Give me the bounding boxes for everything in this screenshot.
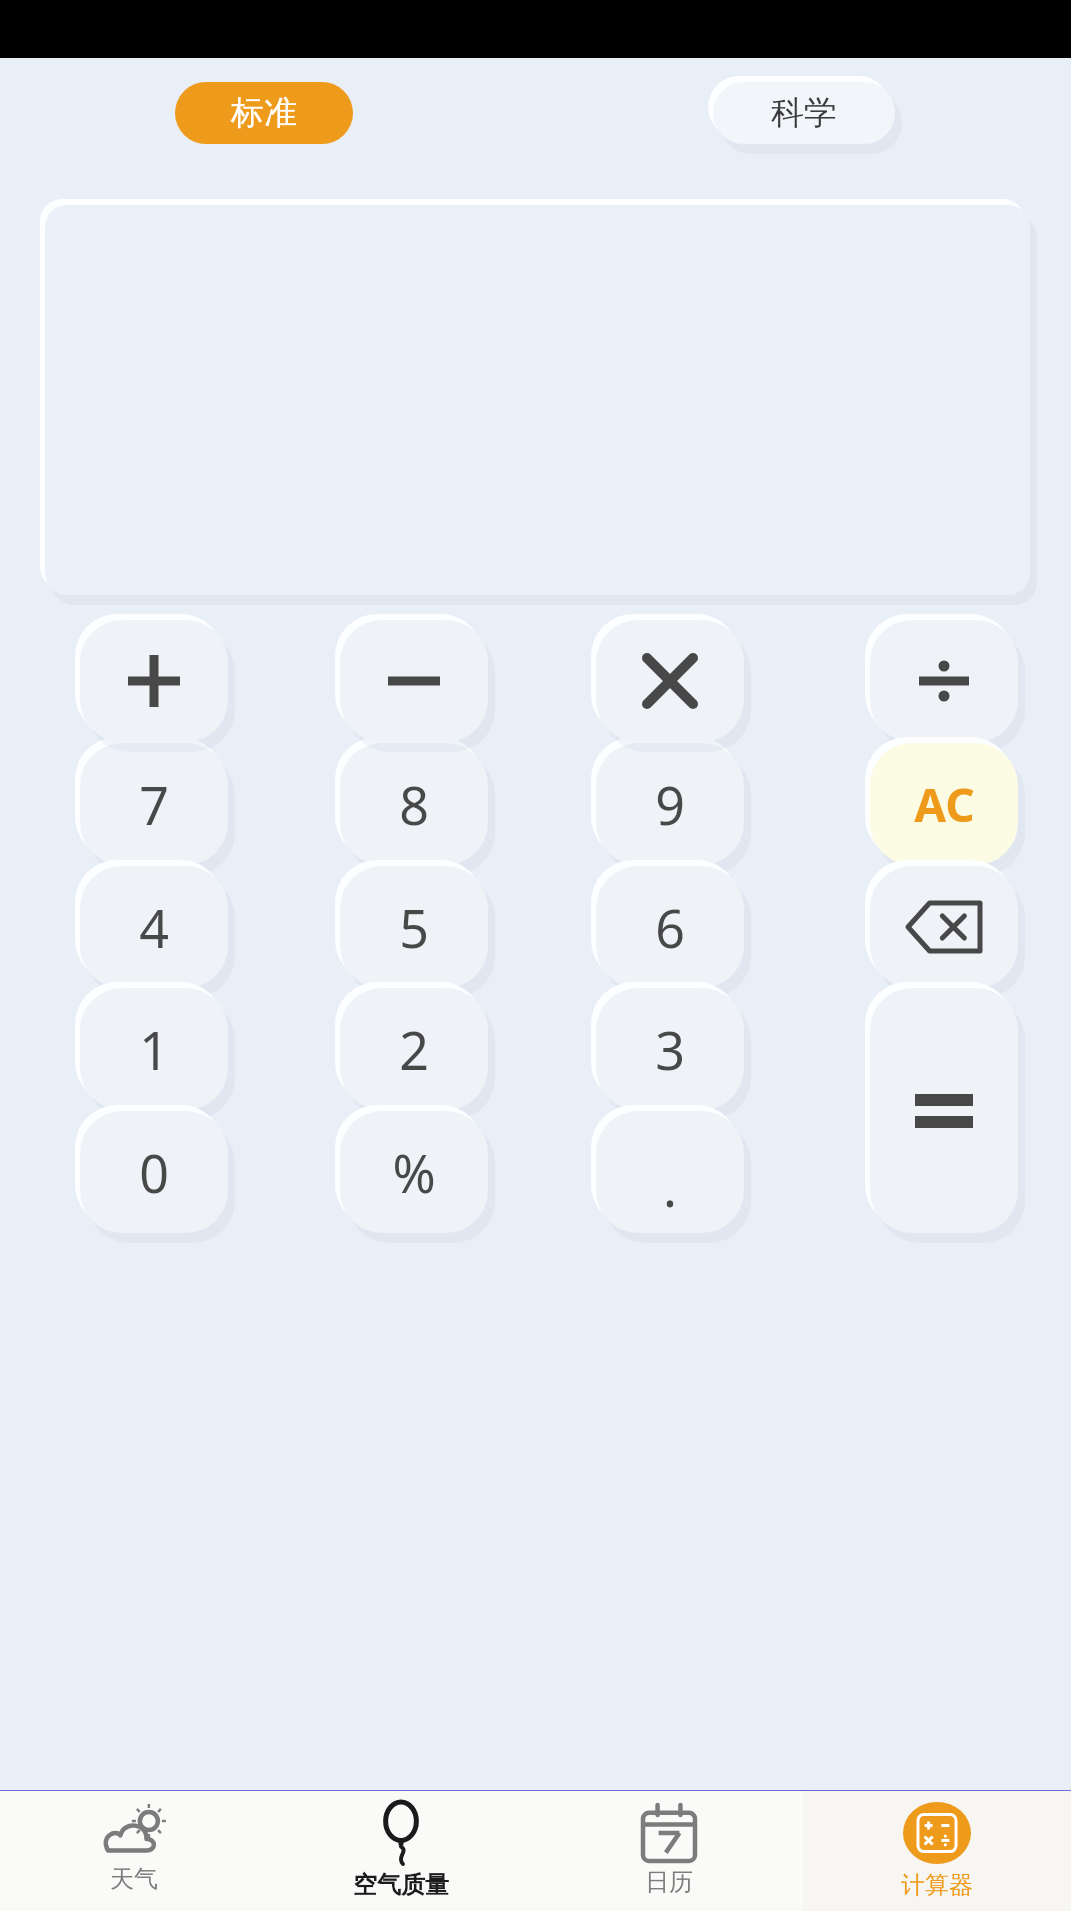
staticText: 2 <box>399 1014 429 1085</box>
button[interactable]: Minus <box>340 620 488 742</box>
button[interactable]: Equals <box>870 988 1018 1233</box>
button[interactable]: 8 <box>340 743 488 865</box>
button[interactable]: 空气质量 <box>267 1791 535 1911</box>
staticText: 计算器 <box>901 1870 973 1900</box>
button[interactable]: 天气 <box>0 1791 267 1911</box>
staticText: 7 <box>139 769 169 840</box>
staticText: 4 <box>139 892 169 963</box>
staticText: 9 <box>655 769 685 840</box>
staticText: 空气质量 <box>353 1870 449 1900</box>
button[interactable]: % <box>340 1111 488 1233</box>
button[interactable]: 2 <box>340 988 488 1110</box>
staticText: 标准 <box>231 92 297 134</box>
staticText: 5 <box>399 892 429 963</box>
staticText: % <box>392 1137 436 1208</box>
button[interactable]: 科学 <box>713 82 895 144</box>
button[interactable]: 4 <box>80 866 228 988</box>
button[interactable]: . <box>596 1111 744 1233</box>
staticText: 日历 <box>645 1867 693 1897</box>
button[interactable]: 0 <box>80 1111 228 1233</box>
staticText: 科学 <box>771 92 837 134</box>
button[interactable]: AC <box>870 743 1018 865</box>
button[interactable]: 计算器 <box>803 1791 1071 1911</box>
staticText: AC <box>914 773 975 836</box>
button[interactable]: 6 <box>596 866 744 988</box>
staticText: 天气 <box>110 1864 158 1894</box>
staticText: 3 <box>655 1014 685 1085</box>
button[interactable]: Divide <box>870 620 1018 742</box>
button[interactable]: 1 <box>80 988 228 1110</box>
staticText: 1 <box>139 1014 169 1085</box>
staticText: 8 <box>399 769 429 840</box>
staticText: . <box>663 1151 677 1222</box>
staticText: 6 <box>655 892 685 963</box>
button[interactable]: 9 <box>596 743 744 865</box>
button[interactable]: 5 <box>340 866 488 988</box>
button[interactable]: Multiply <box>596 620 744 742</box>
staticText: 0 <box>139 1137 169 1208</box>
button[interactable]: 日历 <box>535 1791 803 1911</box>
button[interactable]: 3 <box>596 988 744 1110</box>
button[interactable]: 标准 <box>175 82 353 144</box>
button[interactable]: Plus <box>80 620 228 742</box>
button[interactable]: Backspace <box>870 866 1018 988</box>
button[interactable]: 7 <box>80 743 228 865</box>
